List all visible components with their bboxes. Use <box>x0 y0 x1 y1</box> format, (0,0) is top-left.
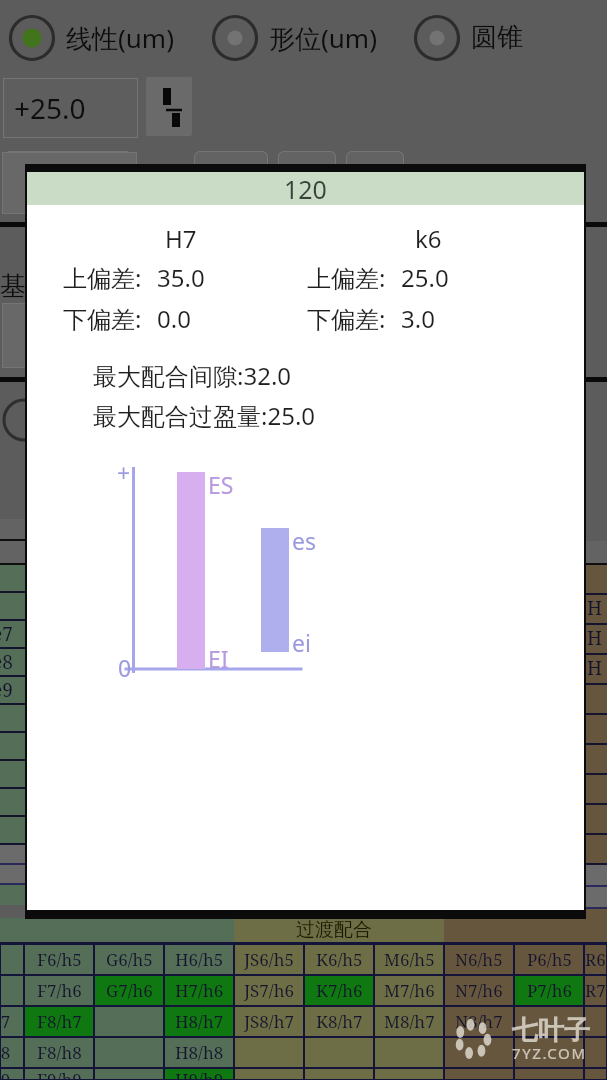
staticText: H7 <box>587 625 607 653</box>
staticText: h7 <box>0 1010 11 1033</box>
staticText: H6 <box>587 595 607 623</box>
staticText: H8/h7 <box>175 1010 224 1033</box>
button[interactable] <box>278 151 336 171</box>
staticText: N8/h7 <box>455 1010 503 1033</box>
staticText: EI <box>208 643 229 674</box>
staticText: JS7/h6 <box>244 979 295 1002</box>
staticText: G6/h5 <box>106 948 153 971</box>
staticText: 上偏差: <box>63 261 142 294</box>
staticText: + <box>117 457 131 488</box>
button[interactable]: 形位(um) <box>203 0 405 75</box>
button[interactable]: 线性(um) <box>0 0 203 75</box>
staticText: JS6/h5 <box>244 948 295 971</box>
staticText: e8 <box>0 649 13 675</box>
staticText: H8/h8 <box>175 1041 224 1064</box>
staticText: es <box>292 525 316 556</box>
staticText: H8 <box>587 655 607 683</box>
staticText: F8/h7 <box>37 1010 82 1033</box>
button[interactable]: Tolerance direction <box>145 76 193 137</box>
button[interactable] <box>194 151 268 171</box>
button[interactable]: +25.0 <box>3 78 138 138</box>
staticText: 圆锥 <box>471 21 523 54</box>
staticText: 25.0 <box>401 261 449 294</box>
staticText: 最大配合过盈量:25.0 <box>93 399 316 432</box>
staticText: 七叶子 <box>512 1014 590 1047</box>
staticText: P7/h6 <box>527 979 572 1002</box>
staticText: 0 <box>118 652 132 683</box>
staticText: 线性(um) <box>66 20 174 56</box>
staticText: ES <box>208 469 234 500</box>
staticText: H6/h5 <box>175 948 224 971</box>
staticText: h8 <box>0 1041 11 1064</box>
staticText: M7/h6 <box>384 979 435 1002</box>
staticText: N6/h5 <box>455 948 503 971</box>
staticText: 形位(um) <box>269 20 377 56</box>
staticText: F6/h5 <box>37 948 82 971</box>
staticText: H9/h9 <box>175 1068 224 1080</box>
staticText: 0.0 <box>157 302 191 335</box>
staticText: e9 <box>0 677 13 703</box>
staticText: R7 <box>585 979 606 1002</box>
staticText: e7 <box>0 621 13 647</box>
button[interactable] <box>2 303 137 368</box>
staticText: R6 <box>585 948 606 971</box>
staticText: G7/h6 <box>106 979 153 1002</box>
button[interactable] <box>346 151 404 171</box>
staticText: 下偏差: <box>63 302 142 335</box>
staticText: K6/h5 <box>316 948 363 971</box>
staticText: M6/h5 <box>384 948 435 971</box>
staticText: 120 <box>284 172 327 205</box>
staticText: 下偏差: <box>307 302 386 335</box>
staticText: 基 <box>0 270 26 303</box>
staticText: 过渡配合 <box>296 918 372 942</box>
button[interactable] <box>2 152 137 214</box>
staticText: H7/h6 <box>175 979 224 1002</box>
staticText: 3.0 <box>401 302 435 335</box>
staticText: F7/h6 <box>37 979 82 1002</box>
staticText: F9/h9 <box>37 1068 82 1080</box>
button[interactable] <box>4 151 132 171</box>
button[interactable]: 圆锥 <box>405 0 607 75</box>
staticText: 上偏差: <box>307 261 386 294</box>
staticText: F8/h8 <box>37 1041 82 1064</box>
staticText: K7/h6 <box>316 979 363 1002</box>
staticText: ei <box>292 627 311 658</box>
staticText: h9 <box>0 1068 11 1080</box>
staticText: 7YZ.COM <box>512 1043 587 1063</box>
staticText: H7 <box>165 222 197 255</box>
staticText: N7/h6 <box>455 979 503 1002</box>
staticText: JS8/h7 <box>244 1010 295 1033</box>
staticText: 最大配合间隙:32.0 <box>93 359 292 392</box>
staticText: +25.0 <box>14 89 86 127</box>
staticText: 35.0 <box>157 261 205 294</box>
staticText: P6/h5 <box>527 948 572 971</box>
staticText: k6 <box>415 222 442 255</box>
staticText: K8/h7 <box>316 1010 363 1033</box>
staticText: M8/h7 <box>384 1010 435 1033</box>
